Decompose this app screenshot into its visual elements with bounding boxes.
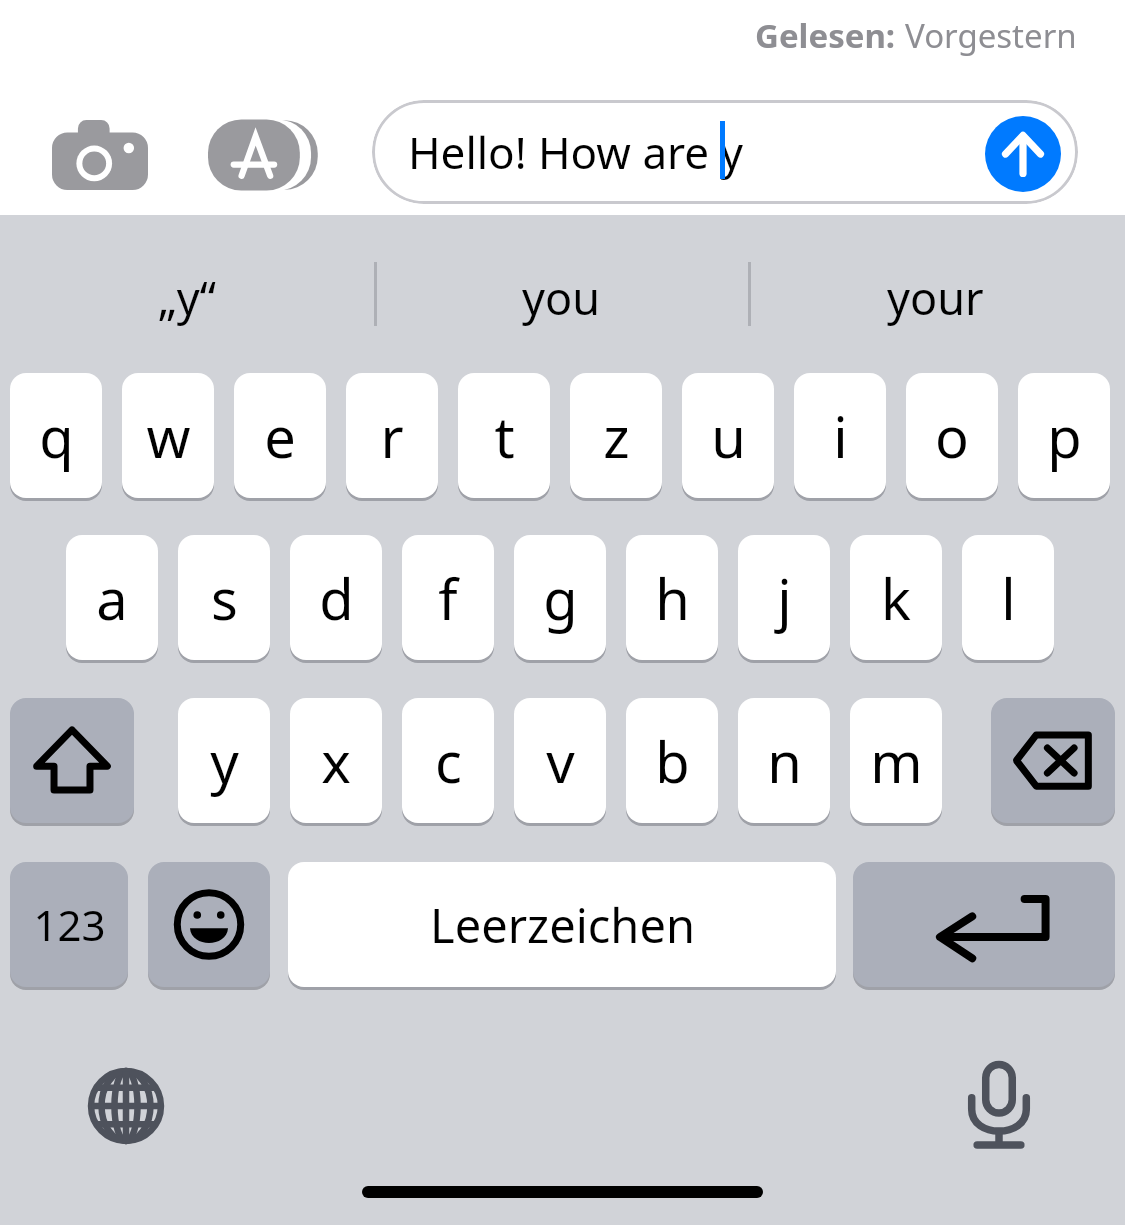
button[interactable]: m — [850, 698, 942, 823]
button[interactable]: k — [850, 535, 942, 660]
button[interactable]: c — [402, 698, 494, 823]
button[interactable]: b — [626, 698, 718, 823]
button[interactable]: Change keyboard — [88, 1068, 164, 1144]
staticText: y — [210, 723, 239, 799]
button[interactable]: h — [626, 535, 718, 660]
staticText: „y“ — [158, 267, 216, 328]
staticText: z — [603, 398, 630, 474]
button[interactable]: t — [458, 373, 550, 498]
staticText: a — [96, 560, 128, 636]
staticText: b — [655, 723, 690, 799]
staticText: m — [870, 723, 923, 799]
staticText: Vorgestern — [905, 13, 1077, 58]
button[interactable]: v — [514, 698, 606, 823]
button[interactable]: q — [10, 373, 102, 498]
button[interactable]: j — [738, 535, 830, 660]
button[interactable]: a — [66, 535, 158, 660]
button[interactable]: „y“ — [17, 258, 357, 336]
button[interactable]: Dictation — [960, 1060, 1038, 1150]
button[interactable]: n — [738, 698, 830, 823]
button[interactable]: Leerzeichen — [288, 862, 836, 987]
button[interactable]: Return — [853, 862, 1115, 987]
staticText: k — [881, 560, 911, 636]
staticText: i — [833, 398, 848, 474]
button[interactable]: l — [962, 535, 1054, 660]
button[interactable]: s — [178, 535, 270, 660]
button[interactable]: your — [765, 258, 1105, 336]
button[interactable]: u — [682, 373, 774, 498]
button[interactable]: Camera — [52, 120, 148, 190]
button[interactable]: Emoji — [148, 862, 270, 987]
button[interactable]: z — [570, 373, 662, 498]
button[interactable]: r — [346, 373, 438, 498]
button[interactable]: x — [290, 698, 382, 823]
staticText: 123 — [33, 896, 106, 953]
staticText: r — [380, 398, 404, 474]
button[interactable]: Shift — [10, 698, 134, 823]
staticText: f — [438, 560, 458, 636]
button[interactable]: Backspace — [991, 698, 1115, 823]
button[interactable]: Apps — [208, 118, 320, 192]
staticText: p — [1047, 398, 1082, 474]
staticText: Hello! How are y — [408, 122, 744, 182]
button[interactable]: p — [1018, 373, 1110, 498]
staticText: you — [522, 267, 600, 328]
staticText: w — [146, 398, 191, 474]
staticText: j — [777, 560, 792, 636]
staticText: n — [767, 723, 802, 799]
button[interactable]: Hello! How are y — [372, 100, 1078, 204]
staticText: q — [39, 398, 74, 474]
button[interactable]: o — [906, 373, 998, 498]
staticText: l — [1001, 560, 1016, 636]
staticText: u — [711, 398, 746, 474]
staticText: your — [887, 267, 984, 328]
staticText: x — [321, 723, 351, 799]
button[interactable]: i — [794, 373, 886, 498]
button[interactable]: you — [391, 258, 731, 336]
button[interactable]: w — [122, 373, 214, 498]
button[interactable]: e — [234, 373, 326, 498]
staticText: h — [655, 560, 690, 636]
button[interactable]: f — [402, 535, 494, 660]
staticText: e — [264, 398, 296, 474]
staticText: s — [211, 560, 238, 636]
button[interactable]: y — [178, 698, 270, 823]
button[interactable]: 123 — [10, 862, 128, 987]
staticText: t — [494, 398, 515, 474]
button[interactable]: Send — [985, 116, 1061, 192]
staticText: Leerzeichen — [430, 893, 695, 957]
staticText: v — [546, 723, 575, 799]
button[interactable]: d — [290, 535, 382, 660]
staticText: g — [543, 560, 578, 636]
staticText: d — [319, 560, 354, 636]
staticText: Gelesen: — [755, 13, 896, 58]
button[interactable]: g — [514, 535, 606, 660]
staticText: c — [435, 723, 462, 799]
staticText: o — [935, 398, 969, 474]
